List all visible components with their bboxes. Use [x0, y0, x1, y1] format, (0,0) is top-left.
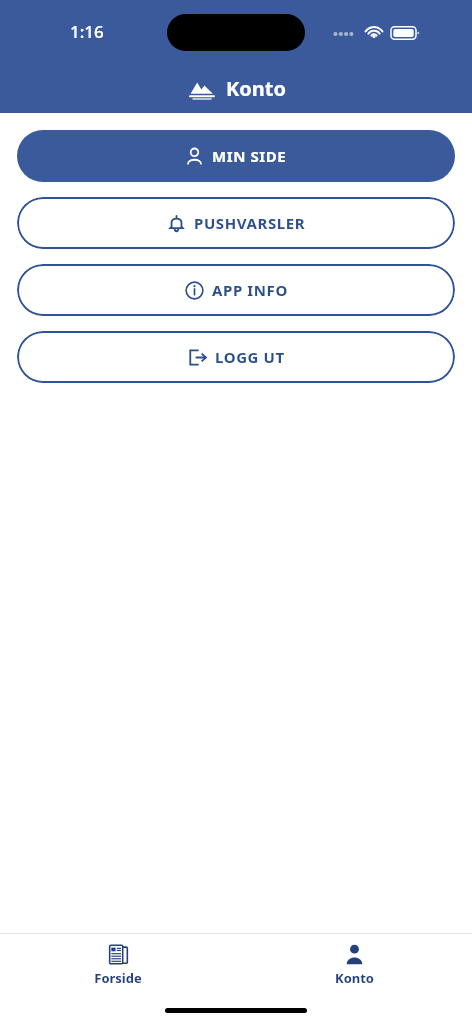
staticText: 1:16 [70, 20, 104, 43]
staticText: LOGG UT [215, 347, 285, 367]
button[interactable]: PUSHVARSLER [17, 197, 455, 249]
button[interactable]: MIN SIDE [17, 130, 455, 182]
button[interactable]: APP INFO [17, 264, 455, 316]
button[interactable]: Konto [236, 934, 472, 987]
button[interactable]: LOGG UT [17, 331, 455, 383]
staticText: Konto [335, 969, 374, 987]
staticText: APP INFO [212, 280, 288, 300]
staticText: Forside [94, 969, 142, 987]
staticText: PUSHVARSLER [194, 213, 306, 233]
button[interactable]: Forside [0, 934, 236, 987]
staticText: MIN SIDE [212, 146, 287, 166]
staticText: Konto [226, 75, 286, 102]
